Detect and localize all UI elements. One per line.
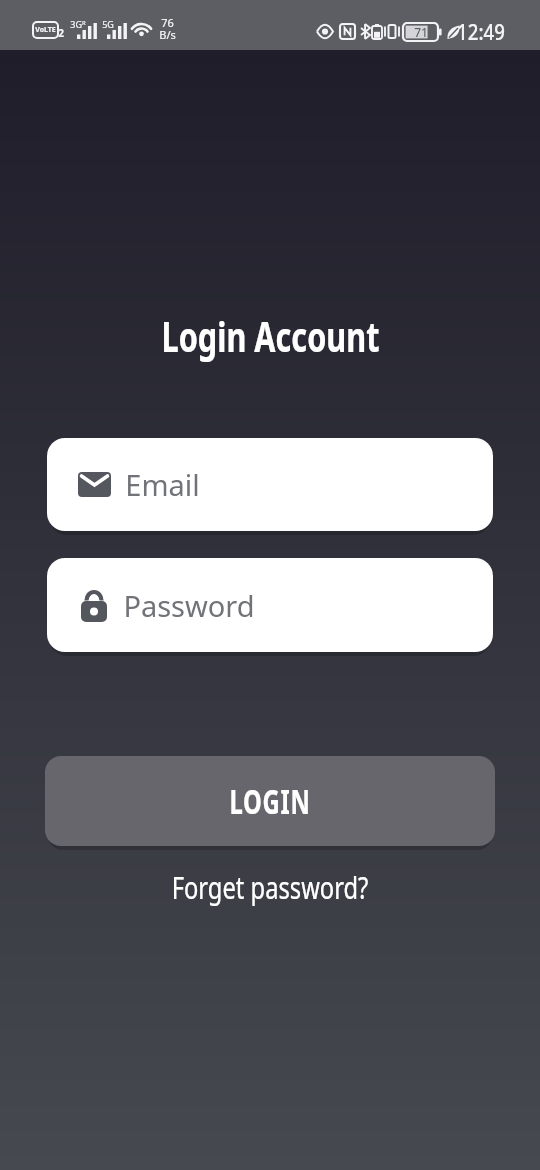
staticText: 76 [161, 15, 174, 30]
staticText: Email [125, 465, 200, 504]
staticText: 12:49 [457, 18, 505, 47]
staticText: Login Account [161, 307, 380, 363]
staticText: 2 [58, 26, 64, 40]
button[interactable]: Password [47, 558, 493, 652]
button[interactable]: Forget password? [0, 866, 540, 908]
staticText: LOGIN [229, 778, 311, 824]
button[interactable]: LOGIN [45, 756, 495, 846]
staticText: B/s [159, 27, 176, 42]
staticText: 3Gᴿ [70, 18, 86, 30]
button[interactable]: Email [47, 438, 493, 531]
staticText: 71 [414, 24, 428, 40]
staticText: 5G [102, 18, 114, 30]
staticText: Password [123, 586, 255, 625]
staticText: Forget password? [171, 866, 369, 908]
staticText: VoLTE [35, 25, 56, 35]
